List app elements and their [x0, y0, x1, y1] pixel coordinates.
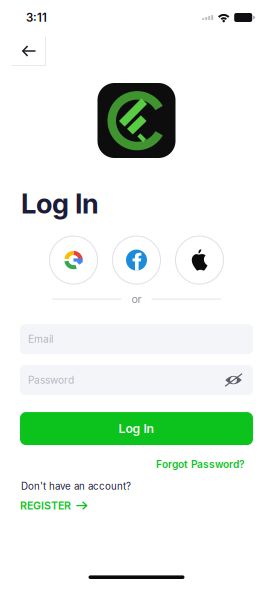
staticText: Password — [28, 374, 74, 386]
button[interactable]: REGISTER — [20, 499, 87, 512]
staticText: REGISTER — [20, 499, 71, 512]
button[interactable]: Log In — [20, 412, 253, 445]
button[interactable]: Sign in with Apple — [175, 236, 224, 284]
staticText: Email — [28, 333, 53, 345]
button[interactable]: Show password — [221, 366, 246, 394]
button[interactable]: Back — [12, 36, 46, 66]
button[interactable]: Sign in with Facebook — [112, 236, 161, 284]
staticText: Log In — [21, 187, 99, 220]
staticText: Forgot Password? — [156, 458, 245, 470]
staticText: Don't have an account? — [21, 480, 131, 492]
staticText: 3:11 — [26, 11, 47, 24]
button[interactable]: Sign in with Google — [49, 236, 98, 284]
staticText: or — [131, 293, 141, 305]
staticText: Log In — [118, 421, 154, 436]
button[interactable]: Forgot Password? — [156, 458, 245, 470]
